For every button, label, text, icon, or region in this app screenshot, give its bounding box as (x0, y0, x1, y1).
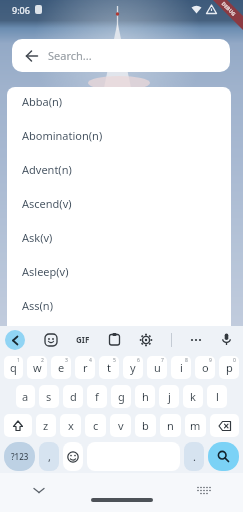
staticText: z (43, 418, 49, 433)
button[interactable] (63, 442, 83, 471)
staticText: m (190, 418, 201, 433)
button[interactable]: e (51, 356, 71, 379)
staticText: Asleep(v) (22, 264, 69, 279)
button[interactable]: w (27, 356, 47, 379)
staticText: o (202, 360, 209, 375)
button[interactable]: d (63, 385, 83, 408)
staticText: Ass(n) (22, 298, 53, 313)
button[interactable] (190, 334, 202, 346)
button[interactable]: z (36, 414, 56, 437)
staticText: 8 (185, 357, 188, 364)
staticText: n (167, 418, 174, 433)
staticText: Ascend(v) (22, 196, 72, 211)
staticText: 7 (161, 357, 164, 364)
staticText: a (22, 389, 29, 404)
staticText: Advent(n) (22, 162, 72, 177)
staticText: k (190, 389, 196, 404)
button[interactable] (5, 330, 25, 350)
staticText: r (83, 360, 88, 375)
staticText: ?123 (11, 451, 29, 462)
button[interactable] (139, 333, 153, 347)
button[interactable]: l (207, 385, 227, 408)
staticText: Search... (48, 48, 92, 63)
staticText: g (118, 389, 125, 404)
button[interactable]: t (99, 356, 119, 379)
button[interactable]: o (195, 356, 215, 379)
button[interactable]: k (183, 385, 203, 408)
staticText: j (168, 389, 171, 404)
staticText: v (118, 418, 124, 433)
staticText: . (193, 449, 196, 464)
staticText: Abomination(n) (22, 128, 103, 143)
button[interactable]: a (16, 385, 35, 408)
button[interactable]: n (160, 414, 181, 437)
staticText: x (68, 418, 74, 433)
button[interactable] (196, 486, 212, 497)
button[interactable] (33, 487, 45, 495)
staticText: l (216, 389, 219, 404)
button[interactable] (4, 414, 32, 437)
staticText: 4 (89, 357, 92, 364)
button[interactable]: s (39, 385, 59, 408)
staticText: 6 (137, 357, 140, 364)
staticText: 5 (113, 357, 116, 364)
button[interactable]: i (171, 356, 191, 379)
staticText: e (58, 360, 65, 375)
staticText: 1 (17, 357, 20, 364)
staticText: q (10, 360, 17, 375)
staticText: u (154, 360, 161, 375)
staticText: h (142, 389, 149, 404)
button[interactable]: u (147, 356, 167, 379)
button[interactable]: Ass(n) (7, 291, 231, 325)
button[interactable]: c (85, 414, 106, 437)
staticText: w (33, 360, 42, 375)
button[interactable]: r (75, 356, 95, 379)
staticText: 2 (41, 357, 44, 364)
button[interactable]: Advent(n) (7, 155, 231, 189)
button[interactable]: v (110, 414, 131, 437)
button[interactable] (44, 333, 58, 347)
staticText: t (107, 360, 111, 375)
staticText: , (48, 449, 51, 464)
button[interactable]: j (159, 385, 179, 408)
button[interactable] (91, 498, 153, 502)
staticText: b (142, 418, 149, 433)
staticText: c (93, 418, 99, 433)
button[interactable]: GIF (76, 334, 90, 345)
staticText: f (95, 389, 99, 404)
button[interactable]: . (184, 442, 204, 471)
staticText: 9:06 (12, 4, 30, 16)
staticText: 9 (209, 357, 212, 364)
button[interactable] (220, 333, 233, 346)
button[interactable] (108, 333, 121, 346)
staticText: d (70, 389, 77, 404)
button[interactable] (210, 414, 239, 437)
staticText: y (130, 360, 136, 375)
button[interactable]: Abba(n) (7, 87, 231, 121)
button[interactable]: Ask(v) (7, 223, 231, 257)
staticText: 0 (233, 357, 236, 364)
button[interactable]: ?123 (4, 442, 35, 471)
button[interactable]: g (111, 385, 131, 408)
button[interactable] (208, 442, 239, 471)
staticText: s (46, 389, 52, 404)
button[interactable]: f (87, 385, 107, 408)
staticText: Ask(v) (22, 230, 53, 245)
button[interactable]: Ascend(v) (7, 189, 231, 223)
button[interactable]: h (135, 385, 155, 408)
staticText: p (226, 360, 233, 375)
button[interactable]: q (4, 356, 23, 379)
staticText: i (180, 360, 183, 375)
button[interactable]: Asleep(v) (7, 257, 231, 291)
staticText: DEBUG (220, 0, 237, 18)
button[interactable]: x (60, 414, 81, 437)
button[interactable]: , (39, 442, 59, 471)
button[interactable]: p (219, 356, 239, 379)
button[interactable]: Abomination(n) (7, 121, 231, 155)
button[interactable]: Search... (12, 39, 230, 72)
button[interactable]: m (185, 414, 206, 437)
button[interactable] (26, 50, 38, 62)
button[interactable]: b (135, 414, 156, 437)
button[interactable]: y (123, 356, 143, 379)
